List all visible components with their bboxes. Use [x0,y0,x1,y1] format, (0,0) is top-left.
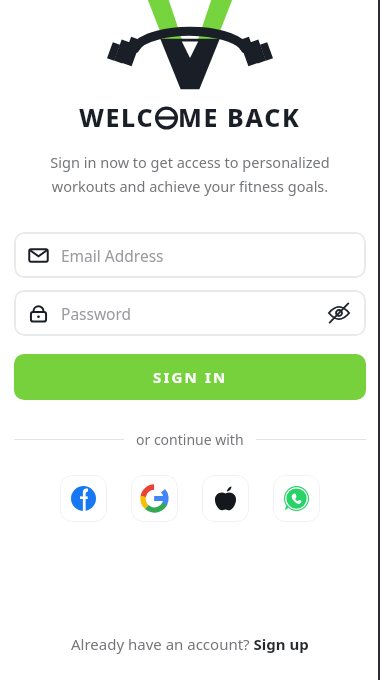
staticText: Already have an account? Sign up [71,634,309,654]
button[interactable]: Sign in with Facebook [60,475,107,522]
staticText: Email Address [61,245,352,266]
button[interactable]: Already have an account? Sign up [0,634,380,680]
staticText: Sign in now to get access to personalize… [18,152,362,196]
staticText: SIGN IN [153,367,228,387]
button[interactable]: Show password [326,300,352,326]
staticText: ME BACK [178,100,301,134]
staticText: Password [61,303,326,324]
button[interactable]: Sign in with WhatsApp [273,475,320,522]
button[interactable]: Password [14,290,366,336]
button[interactable]: Sign in with Google [131,475,178,522]
button[interactable]: SIGN IN [14,354,366,400]
button[interactable]: Email Address [14,232,366,278]
staticText: or continue with [136,430,244,449]
staticText: WELC [79,100,155,134]
button[interactable]: Sign in with Apple [202,475,249,522]
